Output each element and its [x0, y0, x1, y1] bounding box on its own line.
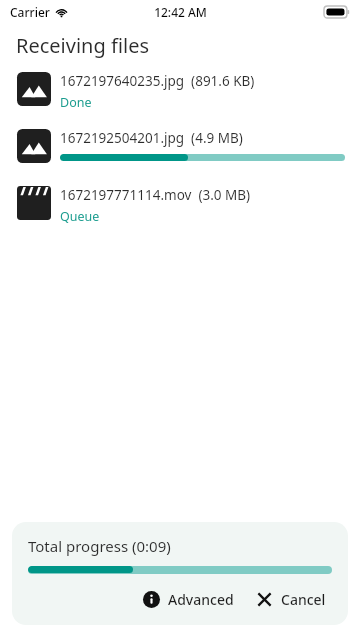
staticText: 1672197640235.jpg (891.6 KB) — [60, 72, 255, 90]
button[interactable]: Advanced — [137, 584, 240, 615]
staticText: Queue — [60, 208, 100, 225]
button[interactable]: 1672197640235.jpg (891.6 KB) — [0, 67, 360, 124]
button[interactable]: Cancel — [250, 584, 332, 615]
staticText: 1672197771114.mov (3.0 MB) — [60, 186, 251, 204]
staticText: 12:42 AM — [154, 4, 207, 20]
staticText: Done — [60, 94, 92, 111]
staticText: Cancel — [281, 590, 326, 609]
staticText: Carrier — [10, 4, 50, 20]
staticText: Total progress (0:09) — [28, 536, 171, 556]
staticText: 1672192504201.jpg (4.9 MB) — [60, 129, 243, 147]
staticText: Receiving files — [16, 32, 149, 59]
staticText: Advanced — [168, 590, 234, 609]
button[interactable]: 1672197771114.mov (3.0 MB) — [0, 181, 360, 238]
button[interactable]: 1672192504201.jpg (4.9 MB) — [0, 124, 360, 181]
